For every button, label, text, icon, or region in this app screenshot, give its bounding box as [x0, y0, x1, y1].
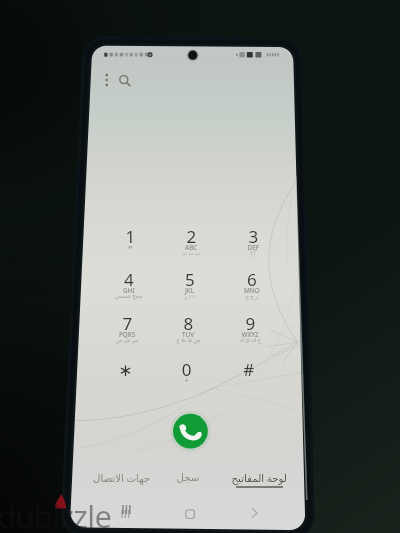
- button[interactable]: Contacts: [95, 463, 155, 489]
- button[interactable]: Keypad: [230, 463, 292, 489]
- other: Photo of a phone showing the dialer: [0, 0, 400, 533]
- button[interactable]: Call: [173, 411, 213, 451]
- button[interactable]: More options: [100, 70, 116, 92]
- button[interactable]: Search: [115, 70, 135, 92]
- button[interactable]: Recents: [168, 463, 218, 489]
